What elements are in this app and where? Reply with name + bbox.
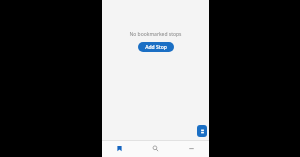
button[interactable]: More (173, 140, 209, 157)
staticText: Add Stop (145, 44, 167, 51)
button[interactable]: Bookmarks (102, 140, 137, 157)
button[interactable]: Search (137, 140, 173, 157)
button[interactable]: Add bookmark (197, 125, 207, 137)
staticText: No bookmarked stops (129, 31, 182, 38)
button[interactable]: Add Stop (138, 42, 174, 52)
